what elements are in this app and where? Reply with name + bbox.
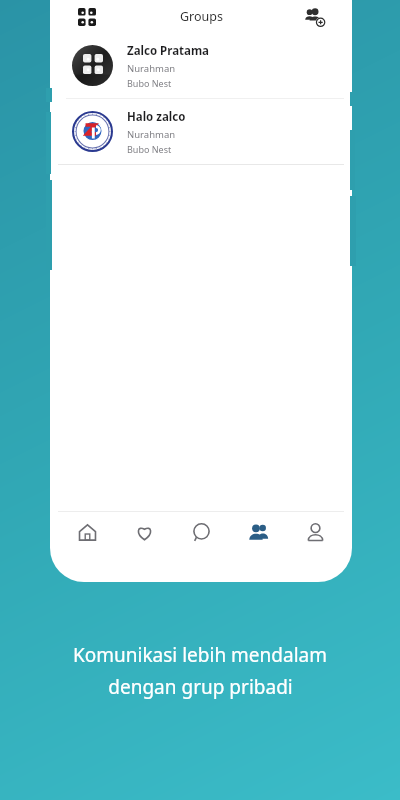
staticText: Bubo Nest <box>127 77 172 89</box>
button[interactable]: Halo zalco <box>58 99 344 164</box>
button[interactable]: Groups <box>230 512 287 552</box>
staticText: Komunikasi lebih mendalam <box>73 642 327 668</box>
staticText: Halo zalco <box>127 109 186 125</box>
staticText: Bubo Nest <box>127 143 172 155</box>
staticText: Groups <box>180 8 223 25</box>
button[interactable]: Messages <box>173 512 230 552</box>
button[interactable]: Add member <box>300 3 328 31</box>
staticText: dengan grup pribadi <box>108 674 293 700</box>
button[interactable]: Likes <box>116 512 173 552</box>
staticText: Nurahman <box>127 62 176 75</box>
staticText: Zalco Pratama <box>127 43 210 59</box>
button[interactable]: Home <box>58 512 116 552</box>
button[interactable]: Bubo home <box>72 2 102 32</box>
button[interactable]: Zalco Pratama <box>58 33 344 98</box>
staticText: Nurahman <box>127 128 176 141</box>
button[interactable]: Profile <box>287 512 344 552</box>
